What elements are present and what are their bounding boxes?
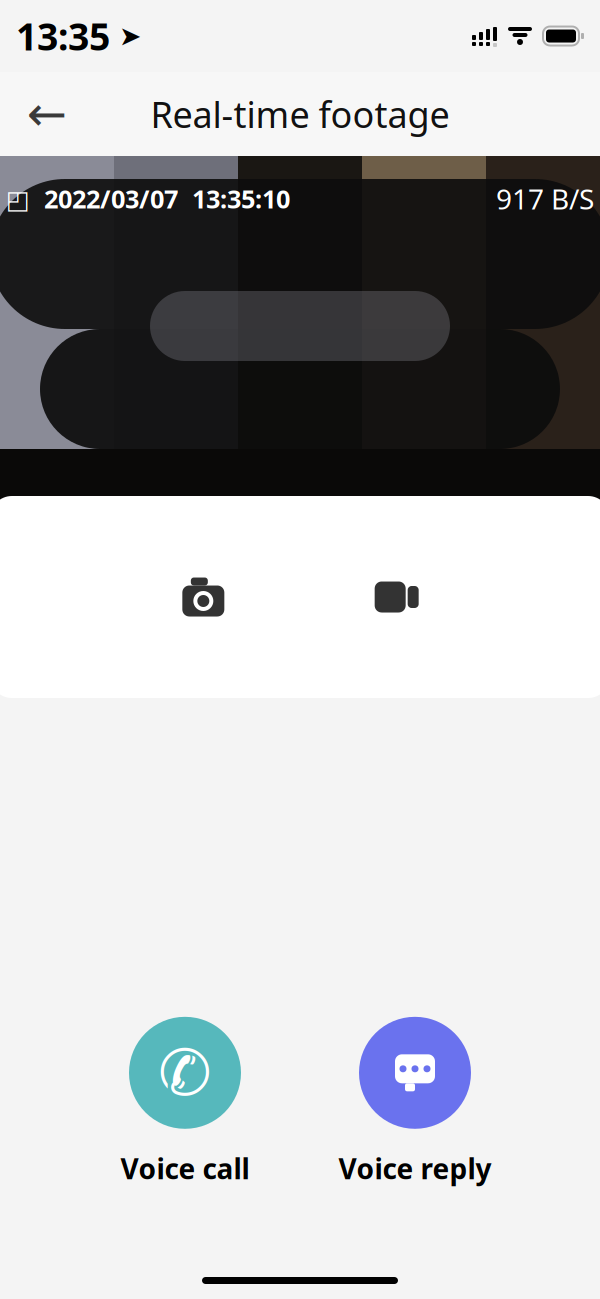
staticText: 13:35 (16, 11, 110, 61)
staticText: Voice call (120, 1150, 249, 1187)
staticText: Voice reply (338, 1150, 491, 1187)
button[interactable]: ✆ (100, 1017, 270, 1187)
button[interactable]: Record video (337, 552, 457, 642)
staticText: ✆ (158, 1036, 212, 1109)
staticText: Real-time footage (150, 90, 449, 138)
staticText: ◰ 2022/03/07 13:35:10 (6, 182, 290, 215)
button[interactable]: Back (18, 85, 76, 143)
button[interactable]: Voice reply (330, 1017, 500, 1187)
staticText: ➤ (110, 21, 141, 51)
button[interactable]: Take photo (143, 552, 263, 642)
staticText: ← (27, 87, 67, 141)
staticText: 917 B/S (496, 180, 594, 217)
